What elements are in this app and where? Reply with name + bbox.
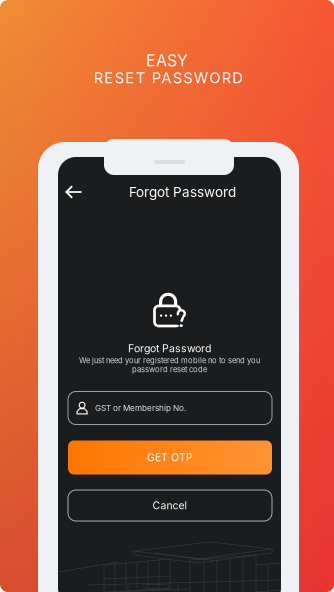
staticText: GET OTP [147,451,193,464]
staticText: Cancel [152,499,187,512]
button[interactable]: Cancel [68,490,272,521]
staticText: EASY [146,51,188,70]
staticText: Forgot Password [128,342,211,355]
button[interactable]: GET OTP [68,440,272,474]
button[interactable]: Back [60,178,88,206]
staticText: GST or Membership No. [95,403,186,413]
staticText: RESET PASSWORD [94,69,243,87]
staticText: We just need your registered mobile no t… [79,356,260,365]
button[interactable]: GST or Membership No. [68,391,272,424]
staticText: Forgot Password [129,184,236,200]
staticText: password reset code [132,365,207,374]
